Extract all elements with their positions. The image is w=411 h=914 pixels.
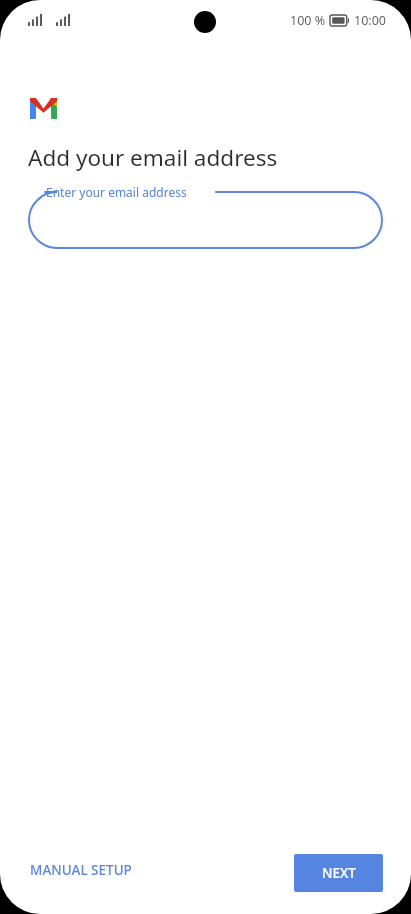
staticText: 10:00	[354, 12, 386, 29]
staticText: 100 %	[290, 12, 326, 29]
button[interactable]: MANUAL SETUP	[16, 852, 146, 888]
staticText: Add your email address	[28, 142, 278, 173]
button[interactable]: Enter your email address	[28, 191, 383, 249]
staticText: MANUAL SETUP	[30, 861, 132, 879]
staticText: NEXT	[322, 864, 356, 882]
staticText: Enter your email address	[46, 184, 187, 200]
button[interactable]: NEXT	[294, 854, 383, 892]
